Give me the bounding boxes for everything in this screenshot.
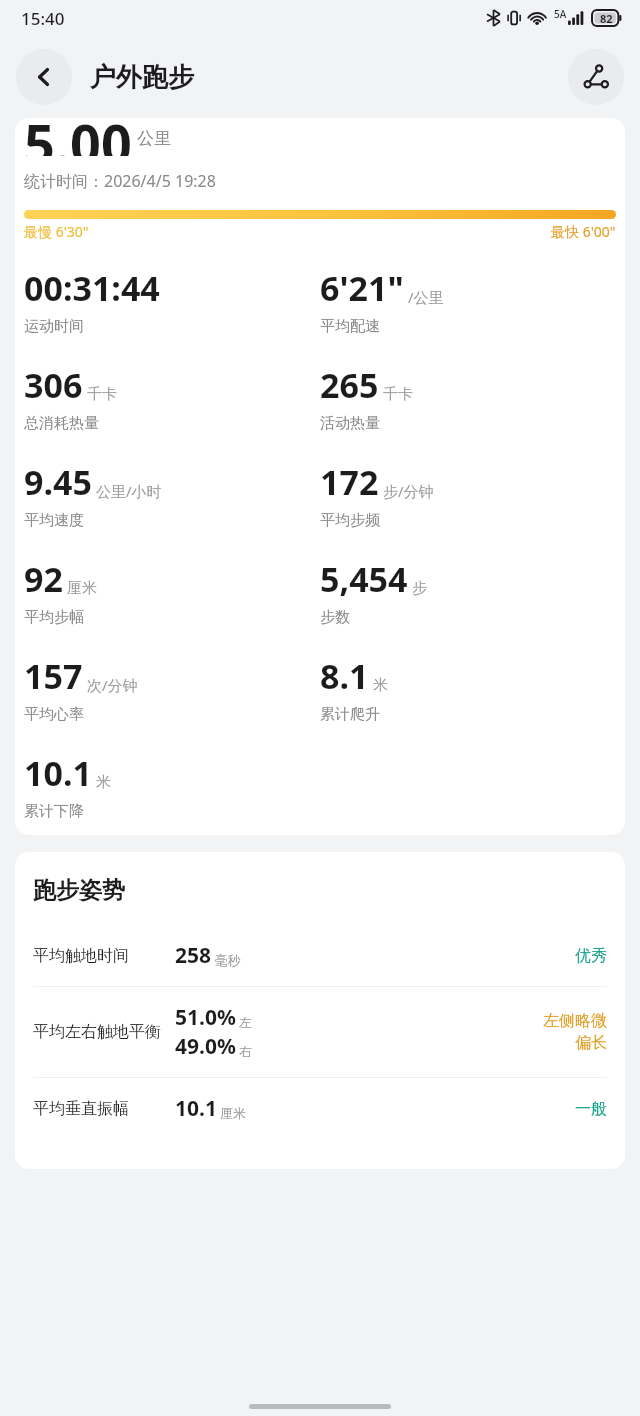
staticText: 51.0% — [175, 1003, 236, 1032]
staticText: 公里 — [137, 128, 171, 149]
staticText: 49.0% — [175, 1032, 236, 1061]
staticText: 平均心率 — [24, 705, 84, 724]
staticText: 毫秒 — [215, 952, 241, 968]
staticText: 步/分钟 — [383, 481, 434, 501]
staticText: 左 — [239, 1014, 252, 1030]
staticText: 92 — [24, 556, 63, 602]
staticText: 千卡 — [87, 385, 117, 404]
staticText: 最快 6'00" — [551, 222, 616, 241]
staticText: 00:31:44 — [24, 265, 160, 311]
staticText: 户外跑步 — [90, 61, 194, 94]
staticText: 公里/小时 — [96, 481, 162, 501]
staticText: 最慢 6'30" — [24, 222, 89, 241]
staticText: 米 — [373, 676, 388, 695]
staticText: 优秀 — [541, 946, 607, 966]
staticText: 平均垂直振幅 — [33, 1099, 129, 1119]
staticText: 平均左右触地平衡 — [33, 1022, 161, 1042]
staticText: 6'21" — [320, 265, 404, 311]
staticText: 10.1 — [175, 1094, 217, 1123]
staticText: 左侧略微偏长 — [541, 1011, 607, 1053]
staticText: 累计下降 — [24, 802, 84, 821]
staticText: 265 — [320, 362, 379, 408]
staticText: 厘米 — [67, 579, 97, 598]
staticText: 15:40 — [21, 7, 65, 30]
staticText: 运动时间 — [24, 317, 84, 336]
staticText: 累计爬升 — [320, 705, 380, 724]
staticText: 右 — [239, 1043, 252, 1059]
button[interactable]: Back — [16, 49, 72, 105]
button[interactable]: 平均触地时间 — [24, 925, 616, 986]
staticText: 一般 — [541, 1099, 607, 1119]
staticText: 统计时间：2026/4/5 19:28 — [24, 170, 216, 192]
staticText: 82 — [600, 11, 613, 26]
staticText: 10.1 — [24, 750, 92, 796]
staticText: 平均步幅 — [24, 608, 84, 627]
staticText: 总消耗热量 — [24, 414, 99, 433]
staticText: 306 — [24, 362, 83, 408]
staticText: 千卡 — [383, 385, 413, 404]
staticText: 米 — [96, 773, 111, 792]
staticText: 5,454 — [320, 556, 408, 602]
staticText: 步 — [412, 579, 427, 598]
button[interactable]: Share — [568, 49, 624, 105]
staticText: /公里 — [408, 287, 444, 307]
staticText: 平均速度 — [24, 511, 84, 530]
staticText: 5A — [554, 7, 567, 21]
staticText: 厘米 — [220, 1105, 246, 1121]
staticText: 平均触地时间 — [33, 946, 129, 966]
staticText: 次/分钟 — [87, 675, 138, 695]
staticText: 平均步频 — [320, 511, 380, 530]
staticText: 8.1 — [320, 653, 369, 699]
button[interactable]: 平均左右触地平衡 — [24, 987, 616, 1077]
staticText: 157 — [24, 653, 83, 699]
staticText: 步数 — [320, 608, 350, 627]
staticText: 跑步姿势 — [33, 876, 125, 905]
staticText: 9.45 — [24, 459, 92, 505]
staticText: 172 — [320, 459, 379, 505]
staticText: 活动热量 — [320, 414, 380, 433]
staticText: 平均配速 — [320, 317, 380, 336]
staticText: 5.00 — [24, 118, 132, 156]
staticText: 258 — [175, 941, 212, 970]
button[interactable]: 平均垂直振幅 — [24, 1078, 616, 1139]
